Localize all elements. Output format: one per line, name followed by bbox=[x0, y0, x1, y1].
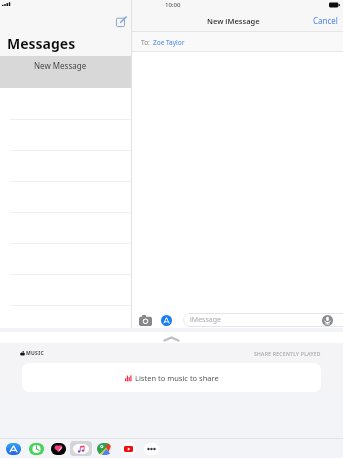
button[interactable]: App Store bbox=[6, 443, 21, 455]
button[interactable]: Cancel bbox=[313, 15, 343, 26]
staticText: Listen to music to share bbox=[135, 373, 219, 383]
staticText: 10:00 bbox=[165, 1, 181, 9]
staticText: New Message bbox=[34, 60, 87, 71]
button[interactable]: To: bbox=[132, 32, 343, 51]
button[interactable]: Camera bbox=[139, 315, 152, 326]
button[interactable]: Maps bbox=[97, 443, 112, 455]
staticText: iMessage bbox=[190, 315, 221, 325]
button[interactable]: YouTube bbox=[121, 443, 136, 455]
button[interactable]: Clock bbox=[29, 443, 44, 455]
button[interactable]: App Store bbox=[161, 315, 172, 326]
button[interactable]: Dictate bbox=[322, 315, 333, 326]
staticText: Cancel bbox=[313, 15, 338, 26]
button[interactable]: Music bbox=[70, 441, 92, 456]
staticText: New iMessage bbox=[207, 16, 260, 26]
staticText: Zoe Taylor bbox=[153, 38, 185, 47]
button[interactable]: iMessage bbox=[183, 313, 343, 327]
button[interactable] bbox=[0, 306, 131, 336]
button[interactable]: New Message bbox=[0, 56, 131, 88]
staticText: Messages bbox=[7, 34, 76, 53]
staticText: To: bbox=[141, 38, 150, 47]
staticText: MUSIC bbox=[26, 350, 44, 357]
button[interactable]: New message bbox=[116, 16, 127, 27]
button[interactable]: More apps bbox=[144, 443, 159, 455]
button[interactable]: Fitness bbox=[51, 443, 66, 455]
button[interactable]: Listen to music to share bbox=[22, 363, 321, 392]
button[interactable]: Expand app drawer bbox=[163, 336, 180, 342]
staticText: SHARE RECENTLY PLAYED bbox=[254, 351, 321, 358]
